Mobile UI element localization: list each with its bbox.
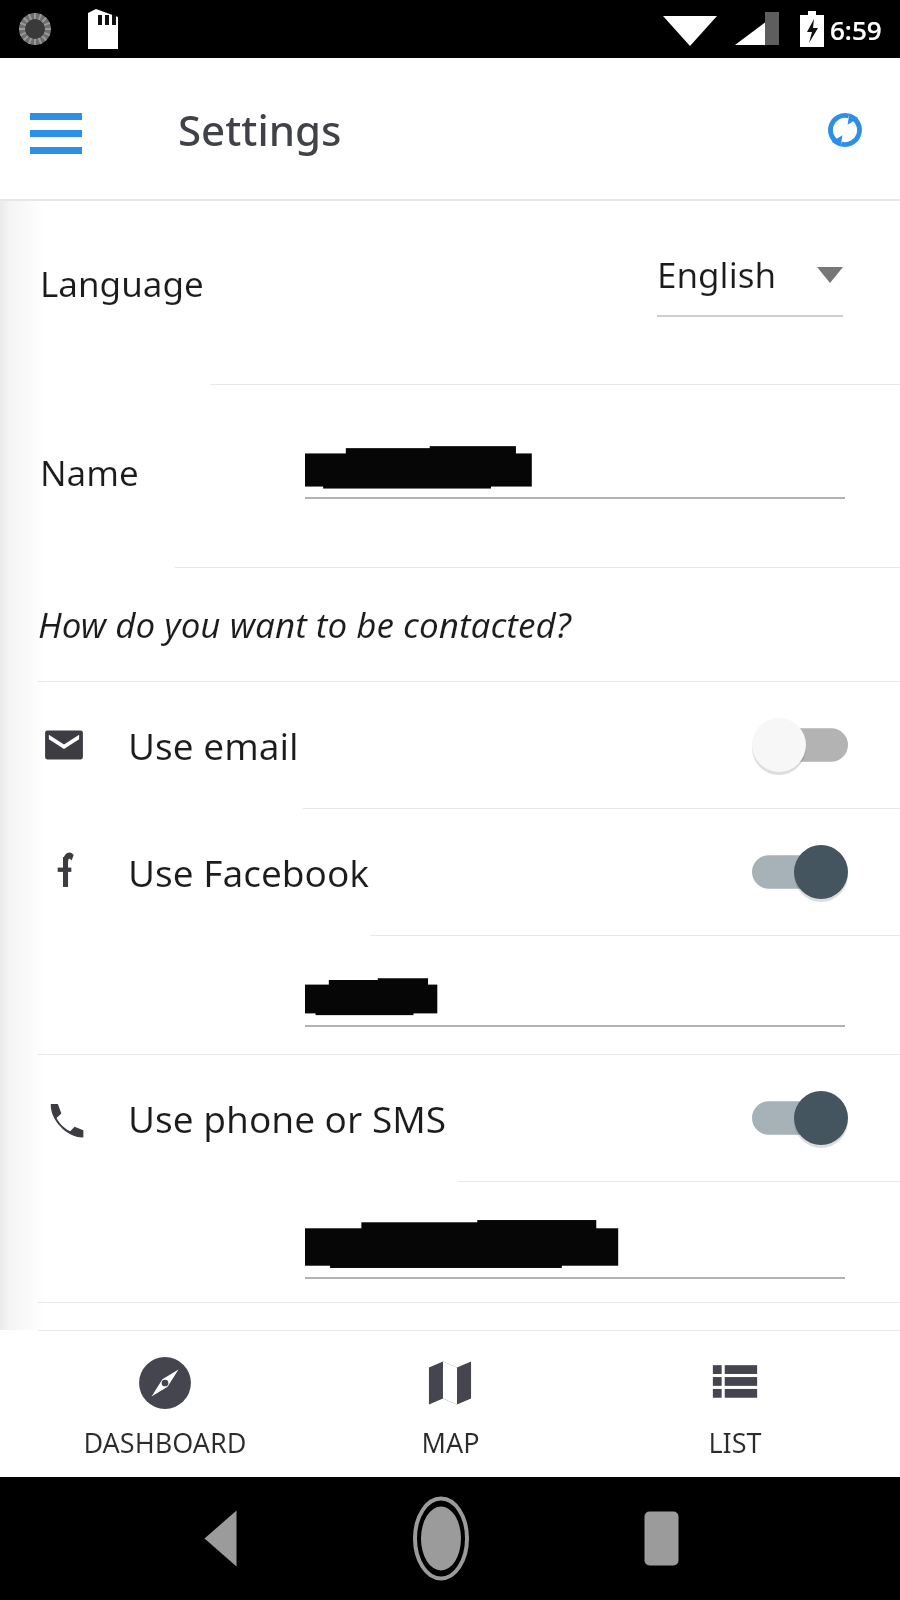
- button[interactable]: Use email: [0, 682, 900, 808]
- button[interactable]: Use phone or SMS: [0, 1055, 900, 1181]
- button[interactable]: LIST: [615, 1338, 855, 1461]
- staticText: MAP: [421, 1424, 480, 1461]
- staticText: How do you want to be contacted?: [38, 601, 571, 649]
- button[interactable]: Name: [0, 385, 900, 567]
- button[interactable]: MAP: [330, 1338, 570, 1461]
- staticText: 6:59: [830, 12, 882, 47]
- button[interactable]: Open navigation drawer: [22, 96, 90, 164]
- staticText: Use email: [128, 720, 299, 770]
- staticText: Use Facebook: [128, 847, 370, 897]
- staticText: English: [657, 251, 777, 299]
- staticText: DASHBOARD: [83, 1424, 247, 1461]
- staticText: Language: [40, 260, 204, 308]
- staticText: Use phone or SMS: [128, 1093, 447, 1143]
- button[interactable]: Refresh: [810, 95, 880, 165]
- staticText: LIST: [708, 1424, 762, 1461]
- staticText: Settings: [178, 101, 342, 158]
- button[interactable]: Language: [0, 201, 900, 384]
- button[interactable]: Use Facebook: [0, 809, 900, 935]
- staticText: Name: [40, 449, 139, 497]
- button[interactable]: DASHBOARD: [45, 1338, 285, 1461]
